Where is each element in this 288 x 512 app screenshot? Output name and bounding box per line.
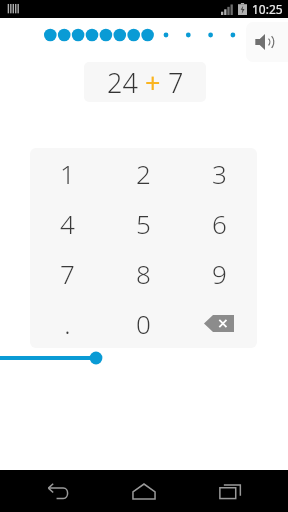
button[interactable] [0,348,288,368]
button[interactable]: Back [30,470,86,512]
staticText: 2 [136,156,151,191]
staticText: 6 [212,206,227,241]
button[interactable]: Recent apps [202,470,258,512]
staticText: 1 [60,156,75,191]
button[interactable]: Backspace [181,298,257,348]
staticText: 4 [60,206,75,241]
staticText: + [145,64,161,101]
button[interactable]: 6 [181,198,257,248]
staticText: 10:25 [252,1,283,17]
button[interactable]: 4 [30,198,105,248]
staticText: 0 [136,306,151,341]
button[interactable]: Home [116,470,172,512]
button[interactable]: 9 [181,248,257,298]
button[interactable]: 0 [105,298,181,348]
staticText: 3 [212,156,227,191]
staticText: . [64,306,71,341]
button[interactable]: 2 [105,148,181,198]
button[interactable]: Play sound [246,22,288,62]
staticText: 24 [107,64,138,101]
staticText: 5 [136,206,151,241]
button[interactable]: 7 [30,248,105,298]
button[interactable]: 8 [105,248,181,298]
staticText: 7 [168,64,184,101]
staticText: 7 [60,256,75,291]
button[interactable]: 5 [105,198,181,248]
button[interactable]: 1 [30,148,105,198]
staticText: 8 [136,256,151,291]
staticText: 9 [212,256,227,291]
button[interactable]: 3 [181,148,257,198]
button[interactable]: . [30,298,105,348]
